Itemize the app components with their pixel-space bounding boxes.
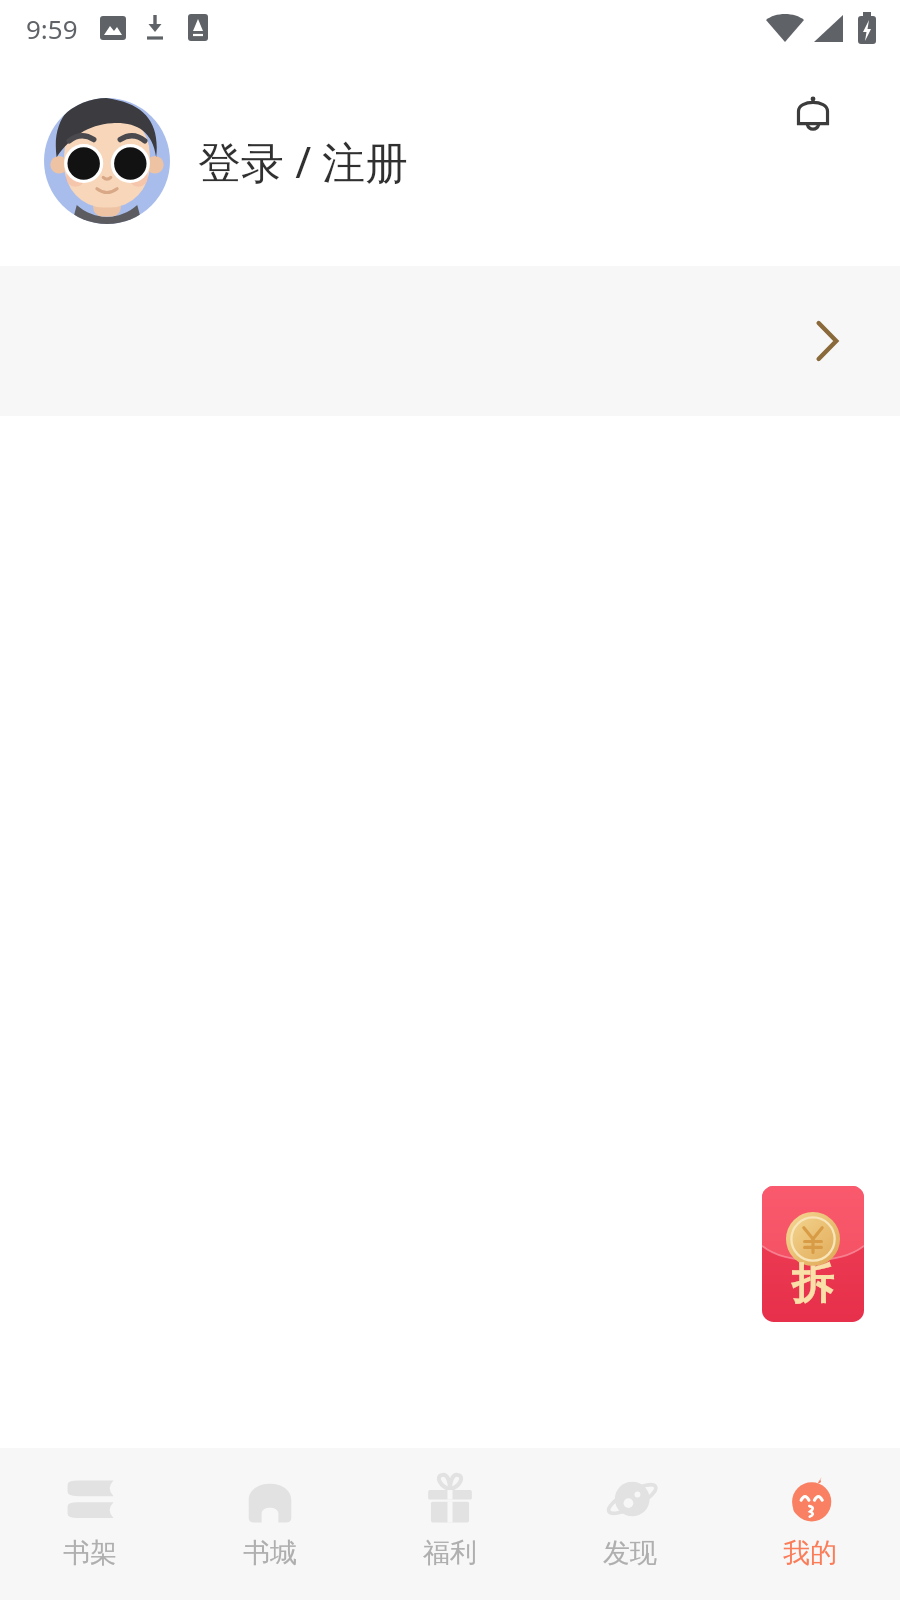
staticText: 我的 (783, 1536, 837, 1570)
staticText: 书架 (63, 1536, 117, 1570)
button[interactable]: 我的 (720, 1448, 900, 1600)
staticText: 9:59 (26, 11, 78, 46)
button[interactable]: Notifications (776, 76, 850, 150)
staticText: 登录 / 注册 (198, 132, 409, 191)
button[interactable]: 登录 / 注册 (44, 98, 409, 224)
staticText: 发现 (603, 1536, 657, 1570)
staticText: 拆 (792, 1258, 834, 1311)
button[interactable] (0, 266, 900, 416)
staticText: 福利 (423, 1536, 477, 1570)
button[interactable]: 福利 (360, 1448, 540, 1600)
button[interactable]: 发现 (540, 1448, 720, 1600)
button[interactable]: 书架 (0, 1448, 180, 1600)
button[interactable]: 书城 (180, 1448, 360, 1600)
staticText: 书城 (243, 1536, 297, 1570)
button[interactable]: Open red packet (762, 1186, 864, 1322)
